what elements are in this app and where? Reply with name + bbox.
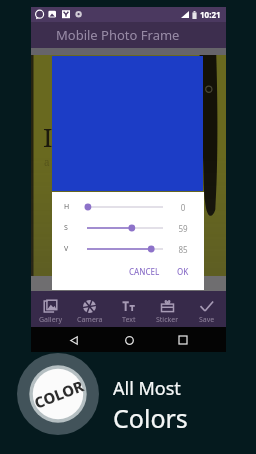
- button[interactable]: Sticker: [148, 291, 187, 327]
- staticText: S: [64, 223, 68, 233]
- button[interactable]: Back: [62, 328, 86, 352]
- staticText: Colors: [113, 401, 188, 435]
- staticText: V: [64, 244, 69, 254]
- staticText: CANCEL: [129, 266, 160, 277]
- staticText: 59: [172, 223, 194, 234]
- button[interactable]: OK: [174, 263, 192, 280]
- button[interactable]: Home: [117, 328, 141, 352]
- staticText: 85: [172, 244, 194, 255]
- staticText: Save: [199, 315, 215, 325]
- staticText: 10:21: [200, 9, 221, 20]
- button[interactable]: Camera: [70, 291, 109, 327]
- staticText: All Most: [113, 376, 181, 401]
- staticText: Camera: [77, 315, 103, 325]
- button[interactable]: Text: [109, 291, 148, 327]
- staticText: Sticker: [156, 315, 179, 325]
- button[interactable]: Gallery: [31, 291, 70, 327]
- staticText: 0: [172, 202, 194, 213]
- button[interactable]: Mobile Photo Frame: [31, 22, 226, 48]
- staticText: COLOR: [31, 375, 87, 413]
- staticText: Text: [122, 315, 136, 325]
- staticText: Gallery: [39, 315, 63, 325]
- button[interactable]: Recents: [171, 328, 195, 352]
- staticText: a: [44, 155, 50, 169]
- button[interactable]: Save: [187, 291, 226, 327]
- staticText: H: [64, 202, 70, 212]
- staticText: OK: [177, 266, 189, 277]
- staticText: I: [43, 119, 53, 154]
- button[interactable]: CANCEL: [126, 263, 163, 280]
- staticText: Mobile Photo Frame: [56, 26, 180, 44]
